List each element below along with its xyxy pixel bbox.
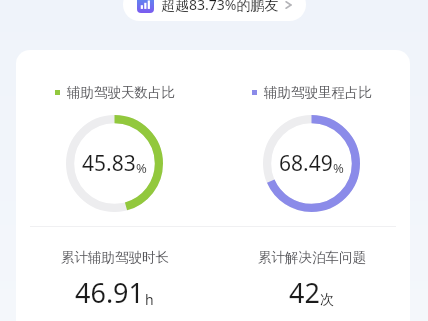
staticText: 超越83.73%的鹏友	[161, 0, 279, 14]
button[interactable]: 辅助驾驶天数占比	[16, 84, 213, 101]
staticText: %	[333, 159, 344, 177]
button[interactable]: 累计辅助驾驶时长	[16, 249, 213, 311]
staticText: 累计辅助驾驶时长	[61, 249, 169, 266]
staticText: 累计解决泊车问题	[258, 249, 366, 266]
staticText: h	[145, 290, 154, 309]
staticText: 辅助驾驶天数占比	[67, 84, 175, 101]
button[interactable]: Ranking	[123, 0, 306, 21]
other: Ranking	[137, 0, 154, 13]
button[interactable]: 累计解决泊车问题	[213, 249, 410, 311]
staticText: 次	[320, 291, 334, 309]
other: More	[285, 0, 292, 11]
staticText: 46.91	[75, 274, 145, 311]
staticText: 42	[289, 274, 320, 311]
staticText: 45.83	[82, 149, 136, 178]
staticText: %	[136, 159, 147, 177]
staticText: 68.49	[279, 149, 333, 178]
button[interactable]: 辅助驾驶里程占比	[213, 84, 410, 101]
staticText: 辅助驾驶里程占比	[264, 84, 372, 101]
